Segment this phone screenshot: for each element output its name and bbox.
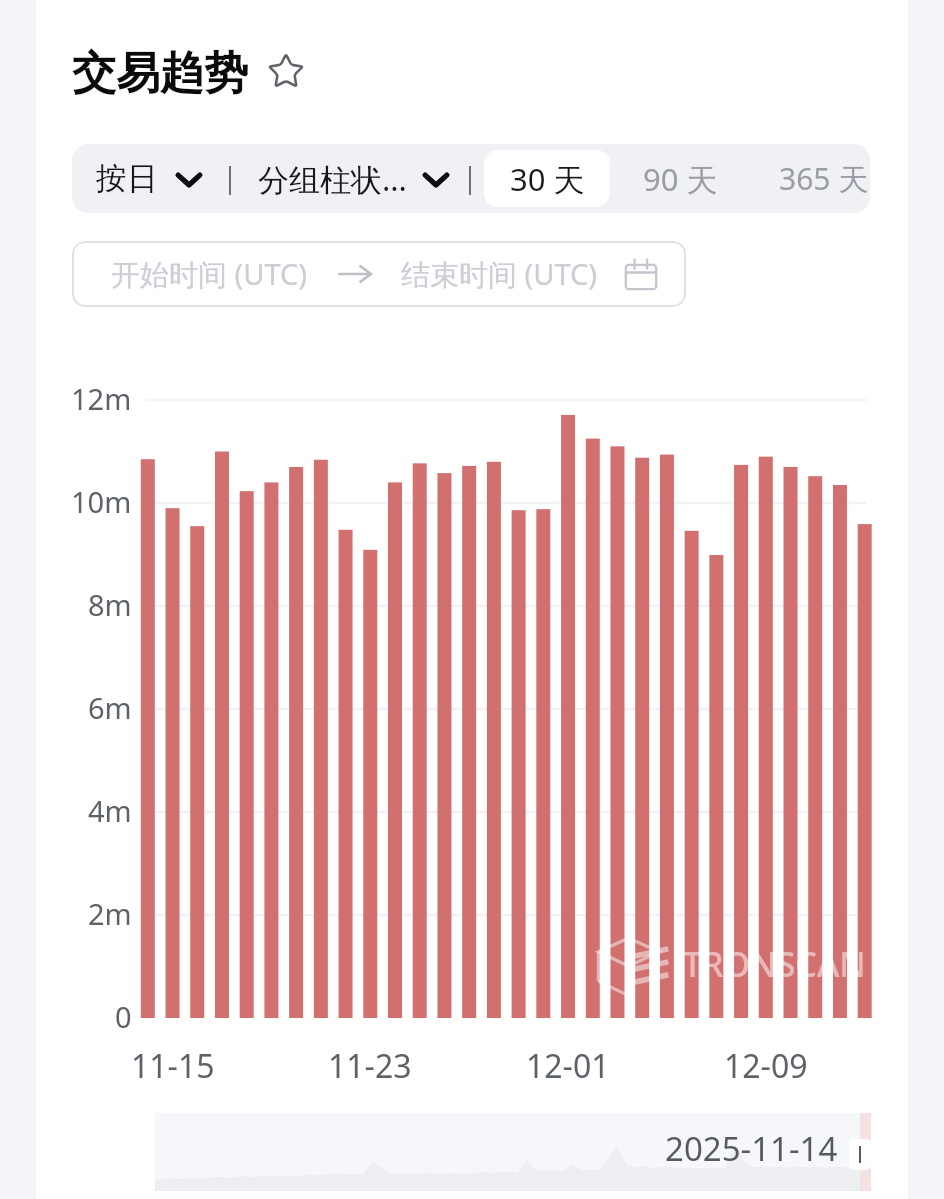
staticText: 12-01 [526,1044,610,1088]
button[interactable]: 30 天 [484,150,610,207]
staticText: 11-15 [131,1044,215,1088]
button[interactable]: 分组柱状... [258,144,451,213]
staticText: 2025-11-14 [665,1126,838,1171]
staticText: 0 [115,997,132,1036]
staticText: 90 天 [643,158,718,200]
staticText: 8m [88,585,132,624]
button[interactable]: 365 天 [770,150,870,207]
staticText: 10m [71,482,132,521]
staticText: 2m [88,894,132,933]
staticText: 结束时间 (UTC) [401,254,598,294]
staticText: 4m [88,791,132,830]
button[interactable]: Favorite [265,50,307,92]
button[interactable]: 2025-11-14 [155,1113,871,1191]
staticText: 分组柱状... [258,158,407,200]
button[interactable]: 按日 [96,144,204,213]
staticText: 365 天 [779,158,869,199]
staticText: TRONSCAN [683,941,866,987]
staticText: 6m [88,688,132,727]
staticText: 交易趋势 [72,46,248,101]
staticText: 按日 [96,159,158,198]
staticText: 30 天 [510,158,585,200]
button[interactable]: Adjust range [849,1139,871,1170]
staticText: 开始时间 (UTC) [111,254,308,294]
button[interactable]: 90 天 [610,150,750,207]
staticText: 12m [71,379,132,418]
button[interactable]: 开始时间 (UTC) [72,241,686,307]
staticText: 11-23 [328,1044,412,1088]
staticText: 12-09 [724,1044,808,1088]
